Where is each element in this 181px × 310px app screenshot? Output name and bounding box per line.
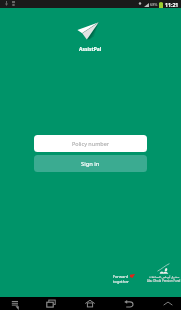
button[interactable]: Sign in [34,155,147,172]
button[interactable]: Home [83,297,97,310]
button[interactable]: Recent apps [44,297,58,310]
staticText: Sign in [81,160,100,168]
button[interactable]: Policy number [34,135,147,152]
button[interactable]: Keyboard [9,297,23,310]
staticText: together [113,279,129,284]
staticText: Abu Dhabi Pension Fund [147,279,181,283]
staticText: 11:21 [165,1,179,8]
staticText: Forward [113,274,129,279]
button[interactable]: Back [122,297,136,310]
staticText: AssistPal [79,46,102,53]
staticText: صندوق أبوظبي للمعاشات [149,275,180,279]
staticText: 68% [150,2,158,7]
staticText: Policy number [72,140,110,147]
button[interactable]: Hide navigation [161,297,175,310]
